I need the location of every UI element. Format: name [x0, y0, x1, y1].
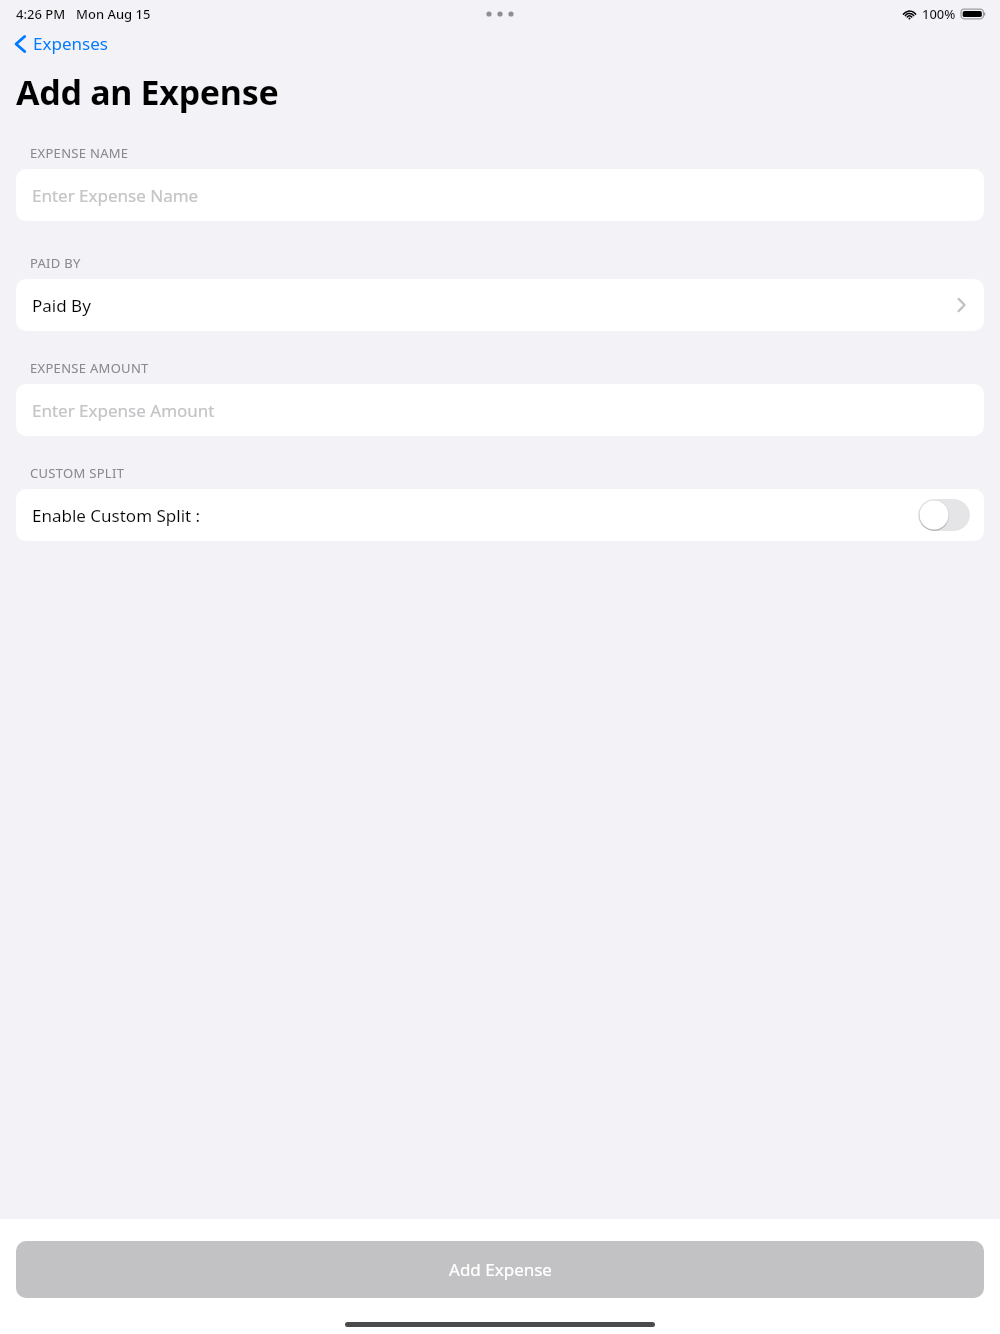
staticText: Enter Expense Name	[32, 184, 199, 207]
staticText: Mon Aug 15	[76, 5, 151, 23]
button[interactable]: Enable Custom Split toggle	[918, 499, 970, 531]
staticText: EXPENSE AMOUNT	[30, 359, 149, 377]
button[interactable]: Enter Expense Amount	[16, 384, 984, 436]
staticText: Enter Expense Amount	[32, 399, 215, 422]
staticText: PAID BY	[30, 254, 81, 272]
staticText: 100%	[922, 5, 956, 23]
button[interactable]: Paid By	[16, 279, 984, 331]
staticText: Add an Expense	[16, 69, 279, 115]
staticText: EXPENSE NAME	[30, 144, 129, 162]
staticText: Add Expense	[449, 1258, 552, 1281]
staticText: CUSTOM SPLIT	[30, 464, 125, 482]
staticText: Paid By	[32, 294, 91, 317]
button[interactable]: Enter Expense Name	[16, 169, 984, 221]
button[interactable]: Add Expense	[16, 1241, 984, 1298]
staticText: 4:26 PM	[16, 5, 66, 23]
staticText: Expenses	[33, 32, 108, 55]
button[interactable]: Enable Custom Split :	[16, 489, 984, 541]
button[interactable]: Expenses	[10, 28, 112, 59]
staticText: Enable Custom Split :	[32, 504, 201, 527]
